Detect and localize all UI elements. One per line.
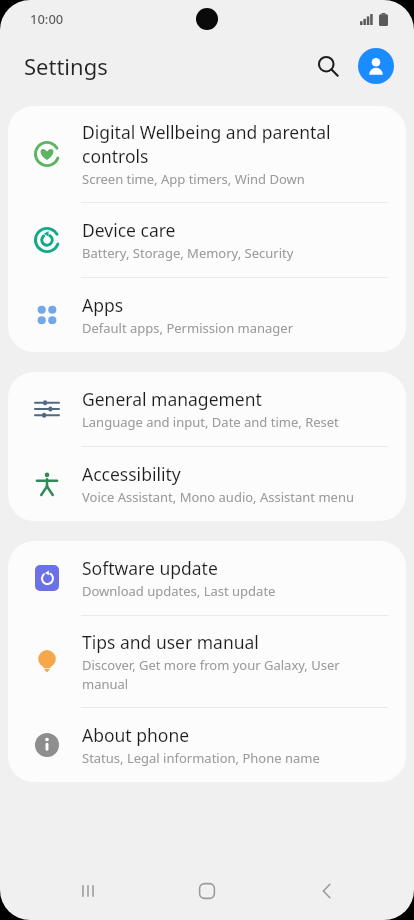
staticText: Settings [24,51,108,81]
staticText: Voice Assistant, Mono audio, Assistant m… [82,488,354,506]
button[interactable]: Digital Wellbeing and parental controls [8,106,406,202]
staticText: Download updates, Last update [82,582,276,600]
staticText: General management [82,387,262,411]
button[interactable]: General management [8,372,406,446]
staticText: Battery, Storage, Memory, Security [82,244,294,262]
button[interactable]: Tips and user manual [8,616,406,707]
staticText: Default apps, Permission manager [82,319,294,337]
staticText: Apps [82,293,124,317]
staticText: 10:00 [30,10,64,28]
button[interactable]: Account [358,48,394,84]
button[interactable]: Home [175,862,239,920]
staticText: Status, Legal information, Phone name [82,749,320,767]
button[interactable]: Software update [8,541,406,615]
staticText: Discover, Get more from your Galaxy, Use… [82,656,388,693]
staticText: Tips and user manual [82,630,259,654]
staticText: Accessibility [82,462,181,486]
button[interactable]: Device care [8,203,406,277]
button[interactable]: Search [306,44,350,88]
button[interactable]: About phone [8,708,406,782]
staticText: Digital Wellbeing and parental controls [82,120,388,168]
staticText: About phone [82,723,190,747]
button[interactable]: Recent apps [56,862,120,920]
staticText: Language and input, Date and time, Reset [82,413,339,431]
button[interactable]: Apps [8,278,406,352]
button[interactable]: Back [295,862,359,920]
button[interactable]: Accessibility [8,447,406,521]
staticText: Screen time, App timers, Wind Down [82,170,305,188]
staticText: Software update [82,556,218,580]
staticText: Device care [82,218,176,242]
